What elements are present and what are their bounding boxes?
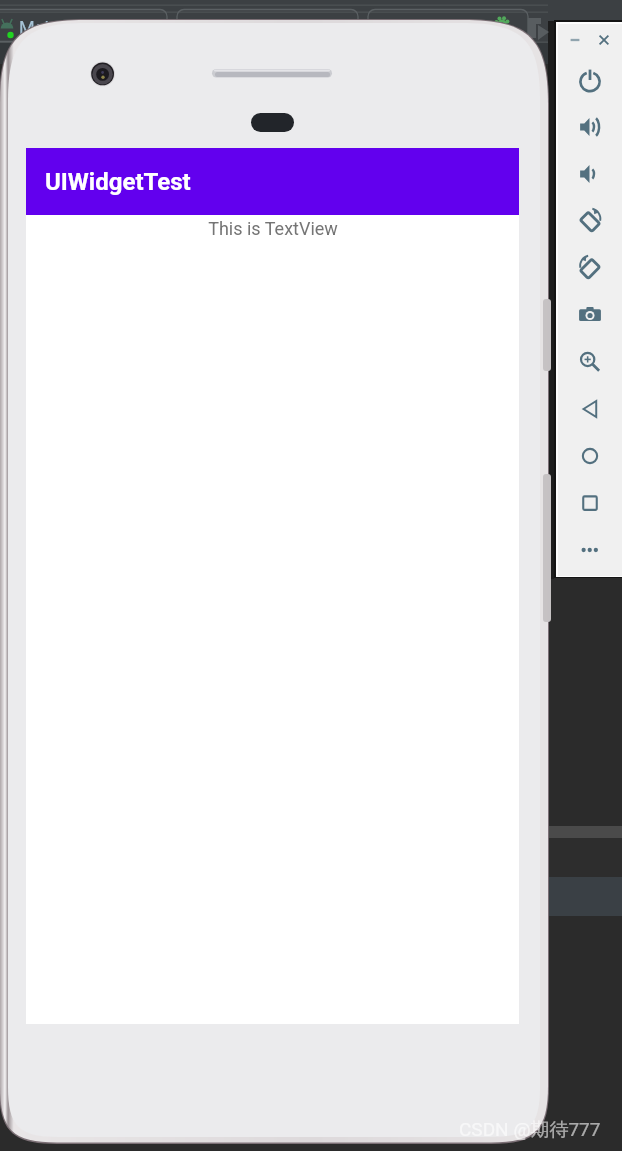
button[interactable]: Take screenshot [577,302,603,328]
button[interactable]: Zoom in [577,349,603,375]
staticText: CSDN @期待777 [459,1118,601,1142]
button[interactable]: More [577,537,603,563]
button[interactable]: Close [593,29,615,51]
staticText: UIWidgetTest [45,168,191,196]
button[interactable]: Home [577,443,603,469]
button[interactable]: Power [577,67,603,93]
button[interactable]: Overview [577,490,603,516]
button[interactable]: Back [577,396,603,422]
staticText: Main A [19,17,76,38]
button[interactable]: Volume up [577,114,603,140]
button[interactable]: UIWidgetTest [26,148,519,215]
button[interactable]: Minimize [564,29,586,51]
button[interactable]: Rotate left [577,208,603,234]
button[interactable]: Rotate right [577,255,603,281]
button[interactable]: Volume down [577,161,603,187]
staticText: This is TextView [208,218,338,239]
